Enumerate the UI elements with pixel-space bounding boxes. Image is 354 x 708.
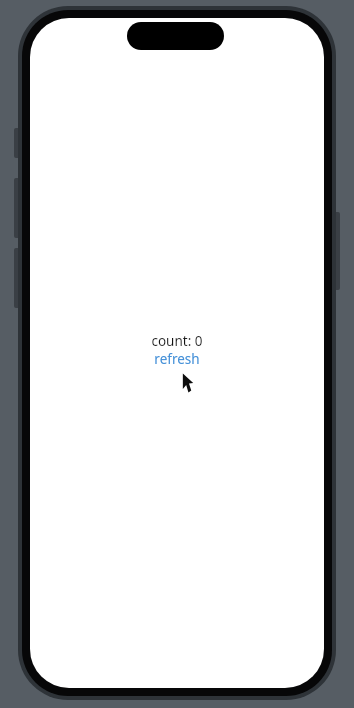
other: Pointer	[182, 373, 196, 393]
staticText: refresh	[154, 350, 200, 368]
staticText: count: 0	[151, 332, 203, 350]
button[interactable]: refresh	[154, 350, 200, 368]
